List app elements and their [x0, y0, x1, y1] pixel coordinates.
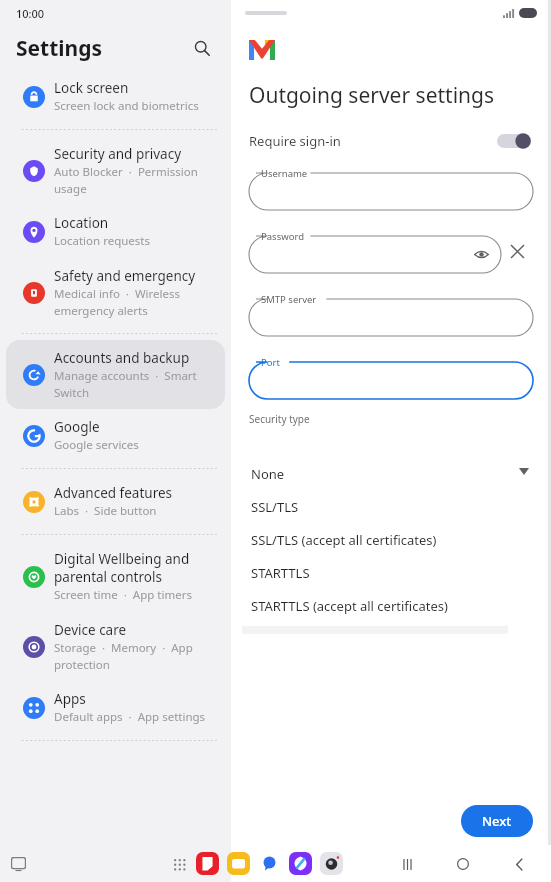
- staticText: Google: [54, 418, 100, 436]
- staticText: Advanced features: [54, 484, 173, 502]
- button[interactable]: Apps: [6, 681, 225, 734]
- button[interactable]: Digital Wellbeing and parental controls: [6, 541, 225, 612]
- button[interactable]: camera: [320, 852, 343, 875]
- button[interactable]: Clear password: [501, 235, 533, 267]
- staticText: Location requests: [54, 233, 150, 249]
- button[interactable]: Home: [447, 848, 479, 880]
- button[interactable]: SSL/TLS: [242, 490, 508, 523]
- staticText: Labs · Side button: [54, 503, 157, 519]
- staticText: Default apps · App settings: [54, 709, 206, 725]
- staticText: Username: [261, 167, 308, 180]
- button[interactable]: Google: [6, 409, 225, 462]
- button[interactable]: All apps: [168, 853, 190, 875]
- button[interactable]: Require sign-in: [249, 132, 533, 150]
- button[interactable]: Next: [461, 805, 533, 837]
- button[interactable]: SSL/TLS (accept all certificates): [242, 523, 508, 556]
- staticText: Require sign-in: [249, 132, 341, 150]
- staticText: Screen lock and biometrics: [54, 98, 199, 114]
- staticText: Location: [54, 214, 109, 232]
- button[interactable]: Back: [503, 848, 535, 880]
- staticText: Security type: [249, 412, 310, 426]
- staticText: Google services: [54, 437, 139, 453]
- staticText: Apps: [54, 690, 86, 708]
- button[interactable]: Security and privacy: [6, 136, 225, 205]
- staticText: Port: [261, 356, 280, 369]
- button[interactable]: Accounts and backup: [6, 340, 225, 409]
- button[interactable]: Location: [6, 205, 225, 258]
- button[interactable]: SMTP server: [249, 292, 533, 336]
- button[interactable]: STARTTLS (accept all certificates): [242, 589, 508, 622]
- staticText: 10:00: [16, 6, 45, 21]
- button[interactable]: gallery: [227, 852, 250, 875]
- staticText: STARTTLS: [251, 564, 310, 582]
- staticText: Storage · Memory · App protection: [54, 640, 213, 672]
- staticText: SSL/TLS: [251, 498, 299, 516]
- staticText: Lock screen: [54, 79, 129, 97]
- button[interactable]: Show password: [471, 244, 491, 264]
- staticText: Accounts and backup: [54, 349, 190, 367]
- staticText: Digital Wellbeing and parental controls: [54, 550, 213, 586]
- button[interactable]: None: [242, 457, 508, 490]
- staticText: None: [251, 465, 285, 483]
- staticText: Auto Blocker · Permission usage: [54, 164, 213, 196]
- button[interactable]: Safety and emergency: [6, 258, 225, 327]
- button[interactable]: internet: [289, 852, 312, 875]
- staticText: SSL/TLS (accept all certificates): [251, 531, 437, 549]
- button[interactable]: STARTTLS: [242, 556, 508, 589]
- staticText: Password: [261, 230, 304, 243]
- button[interactable]: Search: [187, 33, 217, 63]
- button[interactable]: Recents: [391, 848, 423, 880]
- staticText: Medical info · Wireless emergency alerts: [54, 286, 213, 318]
- staticText: Outgoing server settings: [249, 81, 495, 110]
- staticText: Screen time · App timers: [54, 587, 192, 603]
- button[interactable]: Lock screen: [6, 70, 225, 123]
- button[interactable]: Username: [249, 166, 533, 210]
- staticText: SMTP server: [261, 293, 317, 306]
- staticText: Settings: [16, 34, 103, 63]
- staticText: Manage accounts · Smart Switch: [54, 368, 213, 400]
- button[interactable]: notes: [196, 852, 219, 875]
- button[interactable]: messages: [258, 852, 281, 875]
- staticText: STARTTLS (accept all certificates): [251, 597, 448, 615]
- button[interactable]: Password: [249, 229, 501, 273]
- staticText: Safety and emergency: [54, 267, 196, 285]
- staticText: Device care: [54, 621, 127, 639]
- button[interactable]: Screenshot: [5, 851, 31, 877]
- staticText: Next: [482, 812, 512, 830]
- button[interactable]: Advanced features: [6, 475, 225, 528]
- button[interactable]: Port: [249, 355, 533, 399]
- button[interactable]: Device care: [6, 612, 225, 681]
- staticText: Security and privacy: [54, 145, 182, 163]
